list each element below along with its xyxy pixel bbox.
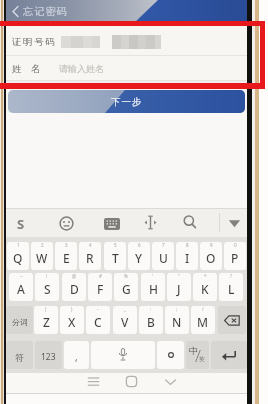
staticText: 5 xyxy=(114,242,117,248)
staticText: E xyxy=(63,250,70,266)
button[interactable]: ) xyxy=(60,306,84,334)
staticText: 姓 xyxy=(12,63,22,75)
staticText: 0 xyxy=(234,242,237,248)
staticText: 1 xyxy=(17,242,20,248)
button[interactable] xyxy=(211,341,247,369)
button[interactable]: * xyxy=(193,273,217,301)
button[interactable]: 3 xyxy=(55,242,77,270)
staticText: ' xyxy=(152,273,154,279)
staticText: _ xyxy=(124,306,126,312)
button[interactable] xyxy=(6,26,247,56)
staticText: 3 xyxy=(65,242,68,248)
button[interactable]: 6 xyxy=(128,242,150,270)
staticText: R xyxy=(86,250,94,266)
button[interactable]: 0 xyxy=(224,242,246,270)
button[interactable]: ~ xyxy=(9,273,33,301)
button[interactable] xyxy=(157,341,184,369)
button[interactable] xyxy=(59,216,74,231)
staticText: S xyxy=(44,281,51,297)
staticText: 分词 xyxy=(12,317,28,327)
button[interactable] xyxy=(228,219,241,228)
button[interactable]: 中 xyxy=(186,341,209,369)
staticText: I xyxy=(185,250,190,266)
button[interactable]: _ xyxy=(113,306,137,334)
button[interactable] xyxy=(144,215,157,230)
button[interactable]: 2 xyxy=(31,242,53,270)
staticText: 证明号码 xyxy=(12,36,57,48)
button[interactable] xyxy=(6,0,247,23)
staticText: D xyxy=(70,281,79,297)
button[interactable]: ; xyxy=(165,306,189,334)
staticText: Q xyxy=(13,250,23,266)
button[interactable]: 8 xyxy=(176,242,198,270)
button[interactable]: 下一步 xyxy=(8,90,245,113)
staticText: X xyxy=(68,314,76,330)
staticText: 下一步 xyxy=(111,96,143,108)
staticText: V xyxy=(121,314,129,330)
staticText: W xyxy=(36,250,48,266)
staticText: P xyxy=(231,250,239,266)
staticText: : xyxy=(150,306,152,312)
button[interactable]: 9 xyxy=(200,242,222,270)
button[interactable]: 7 xyxy=(152,242,174,270)
button[interactable]: 1 xyxy=(7,242,29,270)
staticText: J xyxy=(177,281,181,297)
button[interactable] xyxy=(218,306,246,334)
staticText: % xyxy=(124,273,128,279)
button[interactable] xyxy=(6,56,247,80)
staticText: 名 xyxy=(31,63,41,75)
button[interactable] xyxy=(163,374,178,389)
button[interactable]: S xyxy=(13,215,28,232)
staticText: - xyxy=(97,306,99,312)
button[interactable] xyxy=(91,341,155,369)
button[interactable]: : xyxy=(139,306,163,334)
staticText: S xyxy=(17,215,25,232)
staticText: ? xyxy=(230,273,232,279)
staticText: # xyxy=(99,273,102,279)
staticText: , xyxy=(75,350,78,364)
staticText: C xyxy=(94,314,102,330)
button[interactable] xyxy=(183,215,197,230)
staticText: A xyxy=(17,281,25,297)
staticText: 7 xyxy=(162,242,165,248)
button[interactable]: % xyxy=(114,273,138,301)
button[interactable]: # xyxy=(88,273,112,301)
button[interactable]: ' xyxy=(141,273,165,301)
button[interactable]: - xyxy=(86,306,110,334)
button[interactable]: 分词 xyxy=(6,306,33,334)
staticText: Y xyxy=(135,250,143,266)
staticText: ! xyxy=(46,273,48,279)
button[interactable] xyxy=(104,218,120,230)
button[interactable]: ( xyxy=(34,306,58,334)
button[interactable]: / xyxy=(191,306,215,334)
staticText: H xyxy=(149,281,158,297)
button[interactable]: 4 xyxy=(79,242,101,270)
button[interactable]: 123 xyxy=(35,341,62,369)
button[interactable]: ? xyxy=(219,273,243,301)
staticText: M xyxy=(197,314,209,330)
button[interactable]: @ xyxy=(62,273,86,301)
staticText: 请输入姓名 xyxy=(59,63,104,74)
button[interactable]: , xyxy=(64,341,89,369)
staticText: N xyxy=(172,314,182,330)
staticText: F xyxy=(97,281,104,297)
button[interactable] xyxy=(86,374,101,389)
button[interactable]: 符 xyxy=(6,341,33,369)
button[interactable]: 5 xyxy=(104,242,126,270)
button[interactable] xyxy=(124,374,139,389)
staticText: ~ xyxy=(20,273,23,279)
staticText: O xyxy=(206,250,216,266)
button[interactable]: 忘记密码 xyxy=(23,4,83,18)
staticText: " xyxy=(178,273,180,279)
staticText: * xyxy=(204,273,207,279)
staticText: ) xyxy=(71,306,73,312)
staticText: 6 xyxy=(138,242,141,248)
button[interactable]: " xyxy=(167,273,191,301)
staticText: U xyxy=(159,250,168,266)
staticText: 4 xyxy=(89,242,92,248)
staticText: ( xyxy=(45,306,47,312)
staticText: 2 xyxy=(41,242,44,248)
staticText: 英 xyxy=(199,356,205,363)
staticText: 忘记密码 xyxy=(23,5,68,18)
button[interactable]: ! xyxy=(35,273,59,301)
